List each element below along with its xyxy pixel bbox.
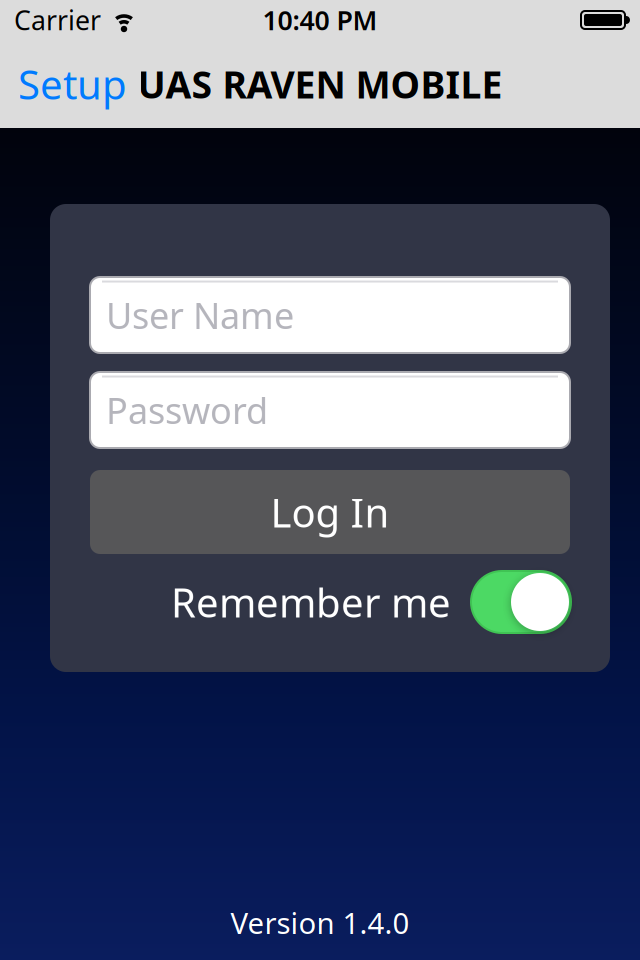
- button[interactable]: Log In: [90, 470, 570, 554]
- staticText: Password: [106, 386, 268, 434]
- staticText: 10:40 PM: [262, 2, 377, 38]
- staticText: Remember me: [171, 575, 451, 628]
- staticText: Log In: [270, 485, 389, 538]
- staticText: Carrier: [14, 2, 101, 38]
- button[interactable]: Remember me: [471, 571, 571, 633]
- staticText: Version 1.4.0: [230, 903, 409, 942]
- staticText: User Name: [106, 291, 294, 339]
- button[interactable]: Setup: [0, 57, 127, 110]
- staticText: UAS RAVEN MOBILE: [137, 59, 502, 109]
- staticText: Setup: [18, 57, 127, 110]
- textField[interactable]: User Name: [106, 291, 570, 339]
- secureTextField[interactable]: Password: [106, 386, 570, 434]
